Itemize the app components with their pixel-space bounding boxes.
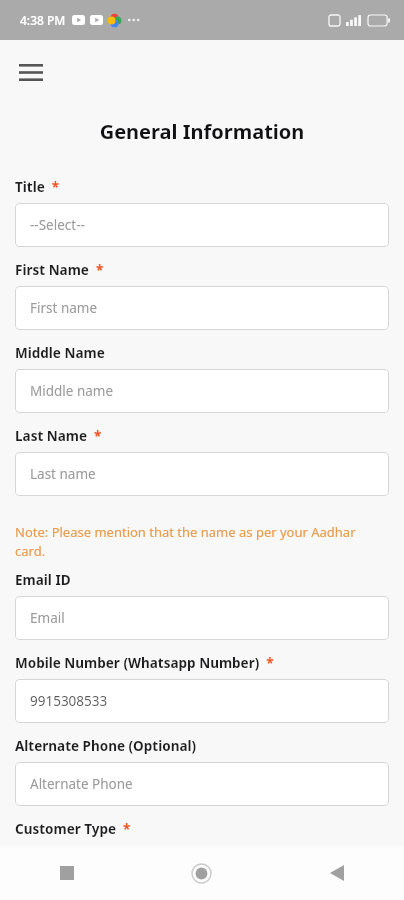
button[interactable]: --Select-- [15,203,389,247]
button[interactable]: Last name [15,452,389,496]
button[interactable]: Recent apps [0,846,134,900]
staticText: Middle name [30,382,114,400]
button[interactable]: Home [134,846,269,900]
staticText: Title * [15,178,60,196]
staticText: First name [30,299,98,317]
staticText: Email [30,609,65,627]
staticText: Mobile Number (Whatsapp Number) * [15,654,274,672]
button[interactable]: Email [15,596,389,640]
staticText: Last Name * [15,427,102,445]
staticText: Customer Type * [15,820,131,838]
button[interactable]: First name [15,286,389,330]
staticText: Last name [30,465,96,483]
button[interactable]: Open navigation menu [13,54,49,90]
button[interactable]: Middle name [15,369,389,413]
button[interactable]: Back [269,846,404,900]
staticText: First Name * [15,261,104,279]
button[interactable]: Alternate Phone [15,762,389,806]
staticText: --Select-- [30,216,85,234]
staticText: Email ID [15,571,71,589]
button[interactable]: 9915308533 [15,679,389,723]
staticText: 4:38 PM [20,12,66,28]
staticText: General Information [0,118,404,145]
staticText: Alternate Phone [30,775,133,793]
staticText: Note: Please mention that the name as pe… [15,523,389,560]
staticText: Alternate Phone (Optional) [15,737,197,755]
staticText: 9915308533 [30,692,108,710]
staticText: Middle Name [15,344,105,362]
